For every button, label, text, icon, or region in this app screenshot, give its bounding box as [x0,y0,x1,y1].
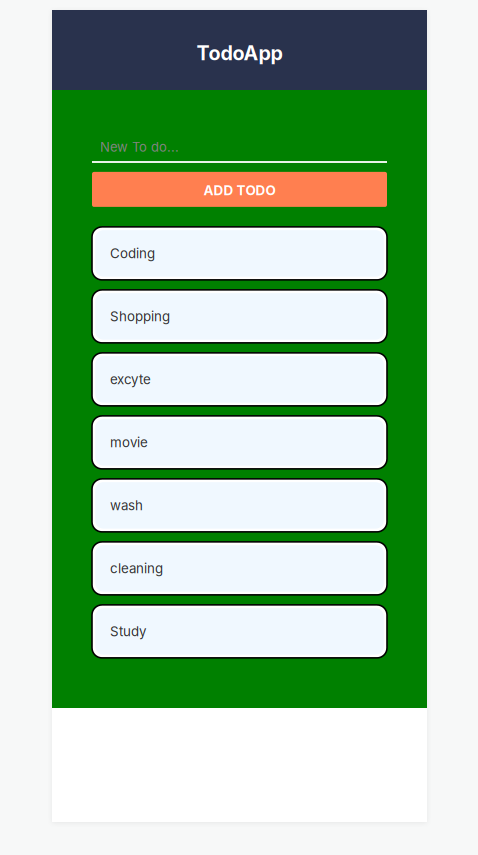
button[interactable]: movie [92,416,387,469]
staticText: TodoApp [196,41,282,65]
staticText: Shopping [110,308,170,324]
button[interactable]: excyte [92,353,387,406]
staticText: Study [110,623,146,639]
button[interactable]: Shopping [92,290,387,343]
button[interactable]: cleaning [92,542,387,595]
staticText: wash [110,497,143,513]
staticText: cleaning [110,560,163,576]
staticText: New To do... [100,139,179,155]
button[interactable]: ADD TODO [92,172,387,207]
staticText: excyte [110,371,151,387]
staticText: Coding [110,245,155,261]
staticText: movie [110,434,148,450]
button[interactable]: wash [92,479,387,532]
button[interactable]: Study [92,605,387,658]
staticText: ADD TODO [203,182,275,199]
button[interactable]: Coding [92,227,387,280]
